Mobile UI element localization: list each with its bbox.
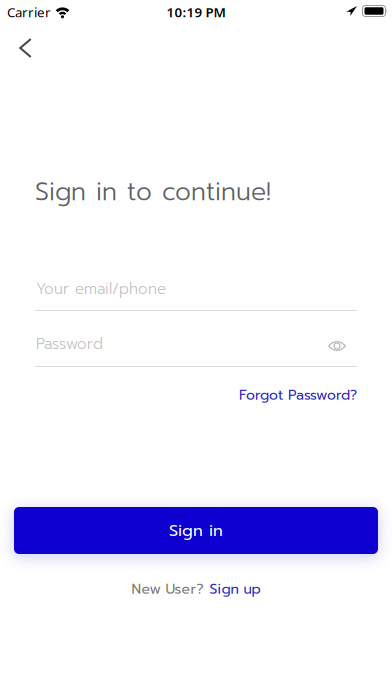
staticText: Sign up: [209, 578, 260, 600]
button[interactable]: Sign up: [209, 578, 260, 600]
button[interactable]: Sign in: [14, 507, 378, 554]
staticText: Password: [36, 333, 103, 355]
button[interactable]: Forgot Password?: [239, 384, 357, 406]
staticText: Forgot Password?: [239, 384, 357, 406]
button[interactable]: Show password: [322, 334, 351, 357]
staticText: Your email/phone: [36, 278, 166, 300]
staticText: Sign in to continue!: [35, 173, 271, 211]
button[interactable]: Back: [8, 27, 43, 69]
staticText: New User?: [131, 578, 203, 600]
staticText: Carrier: [7, 3, 51, 21]
staticText: 10:19 PM: [166, 3, 225, 21]
staticText: Sign in: [169, 518, 223, 543]
